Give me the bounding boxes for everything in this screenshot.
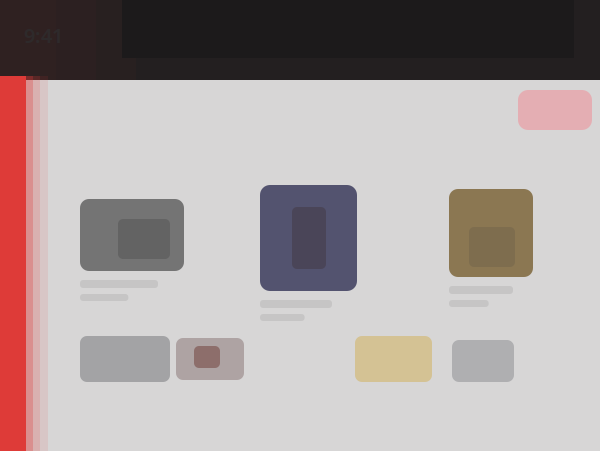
button[interactable]: Artwork <box>80 336 170 382</box>
button[interactable]: Artwork <box>260 185 357 291</box>
button[interactable]: Artwork <box>449 189 533 277</box>
button[interactable]: Artwork <box>176 338 244 380</box>
button[interactable]: Artwork <box>452 340 514 382</box>
button[interactable]: Artwork <box>80 199 184 271</box>
staticText: 9:41 <box>24 22 63 49</box>
button[interactable]: Artwork <box>355 336 432 382</box>
button[interactable]: Filter <box>518 90 592 130</box>
